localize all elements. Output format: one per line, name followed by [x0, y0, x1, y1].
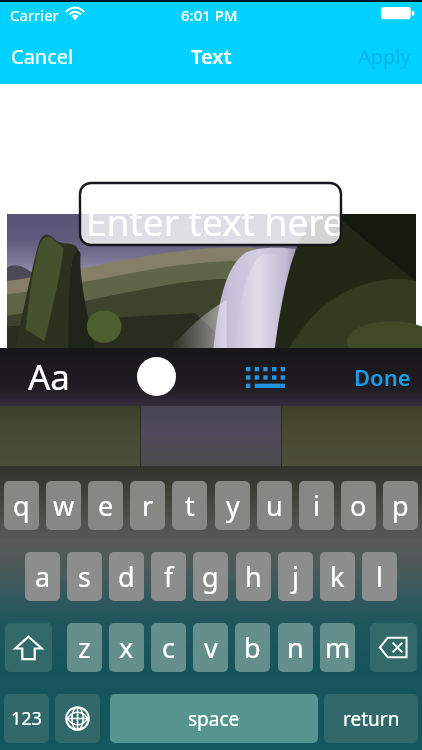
button[interactable]: p	[383, 481, 418, 530]
button[interactable]: Keyboard	[226, 348, 304, 406]
button[interactable]: 123	[4, 694, 49, 743]
staticText: t	[185, 487, 195, 524]
staticText: s	[78, 558, 91, 595]
button[interactable]: Delete	[370, 623, 417, 672]
button[interactable]: a	[25, 552, 60, 601]
button[interactable]: Font style	[10, 348, 88, 406]
staticText: x	[119, 629, 134, 666]
staticText: Carrier	[10, 5, 59, 25]
staticText: 123	[11, 706, 42, 731]
button[interactable]: e	[88, 481, 123, 530]
button[interactable]: h	[236, 552, 271, 601]
button[interactable]: j	[278, 552, 313, 601]
button[interactable]: g	[193, 552, 228, 601]
button[interactable]: space	[110, 694, 318, 743]
staticText: i	[313, 487, 320, 524]
button[interactable]: w	[46, 481, 81, 530]
staticText: k	[330, 558, 345, 595]
button[interactable]: Done	[342, 348, 422, 406]
staticText: o	[350, 487, 367, 524]
button[interactable]: Apply	[346, 38, 422, 74]
staticText: a	[35, 558, 51, 595]
staticText: p	[392, 487, 409, 524]
staticText: w	[53, 487, 75, 524]
button[interactable]: s	[67, 552, 102, 601]
staticText: Text	[191, 43, 232, 70]
button[interactable]: b	[235, 623, 270, 672]
staticText: g	[202, 558, 219, 595]
button[interactable]: x	[109, 623, 144, 672]
button[interactable]: u	[257, 481, 292, 530]
staticText: u	[266, 487, 283, 524]
staticText: b	[244, 629, 261, 666]
button[interactable]: q	[4, 481, 39, 530]
button[interactable]: i	[299, 481, 334, 530]
staticText: v	[204, 629, 218, 666]
staticText: l	[376, 558, 383, 595]
button[interactable]: Switch keyboard	[55, 694, 100, 743]
staticText: return	[343, 706, 400, 732]
staticText: d	[118, 558, 135, 595]
staticText: z	[78, 629, 91, 666]
staticText: Cancel	[11, 43, 74, 70]
staticText: j	[292, 558, 299, 595]
button[interactable]: l	[362, 552, 397, 601]
button[interactable]: n	[278, 623, 313, 672]
button[interactable]: return	[324, 694, 418, 743]
staticText: Enter text here	[86, 196, 344, 246]
button[interactable]	[282, 406, 422, 466]
button[interactable]: z	[67, 623, 102, 672]
button[interactable]	[141, 406, 281, 466]
staticText: Aa	[28, 353, 71, 401]
staticText: Done	[354, 362, 411, 392]
staticText: h	[245, 558, 262, 595]
button[interactable]: t	[172, 481, 207, 530]
button[interactable]: r	[130, 481, 165, 530]
staticText: e	[98, 487, 114, 524]
button[interactable]	[80, 183, 341, 245]
button[interactable]: Cancel	[0, 38, 90, 74]
button[interactable]: m	[320, 623, 355, 672]
button[interactable]: d	[109, 552, 144, 601]
staticText: c	[162, 629, 175, 666]
staticText: space	[188, 706, 240, 732]
button[interactable]	[0, 406, 140, 466]
staticText: y	[226, 487, 240, 524]
staticText: Apply	[358, 43, 411, 70]
button[interactable]: Text colour	[117, 348, 195, 406]
staticText: q	[13, 487, 30, 524]
button[interactable]: v	[193, 623, 228, 672]
button[interactable]: Shift	[5, 623, 52, 672]
staticText: m	[325, 629, 351, 666]
button[interactable]: c	[151, 623, 186, 672]
staticText: 6:01 PM	[181, 5, 238, 25]
staticText: n	[287, 629, 304, 666]
button[interactable]: f	[151, 552, 186, 601]
button[interactable]: o	[341, 481, 376, 530]
staticText: f	[164, 558, 174, 595]
button[interactable]: y	[215, 481, 250, 530]
button[interactable]: k	[320, 552, 355, 601]
staticText: r	[142, 487, 154, 524]
